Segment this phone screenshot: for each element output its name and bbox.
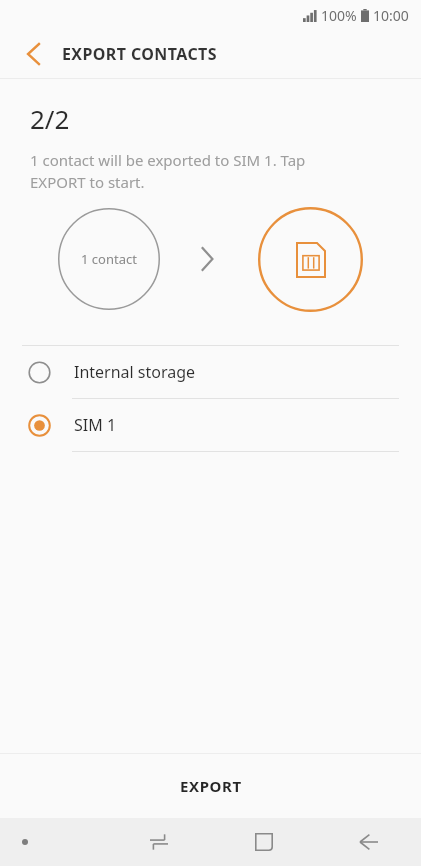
button[interactable]: EXPORT [0, 754, 421, 818]
button[interactable]: SIM 1 [0, 399, 421, 451]
staticText: 1 contact will be exported to SIM 1. Tap… [30, 150, 306, 193]
staticText: Internal storage [74, 361, 196, 383]
staticText: SIM 1 [74, 414, 117, 436]
button[interactable]: Recents [106, 818, 211, 866]
button[interactable]: Home [211, 818, 316, 866]
button[interactable]: Back [16, 37, 50, 71]
staticText: 100% [321, 6, 357, 25]
staticText: 2/2 [30, 101, 70, 136]
staticText: EXPORT CONTACTS [62, 43, 217, 65]
staticText: EXPORT [180, 776, 242, 796]
button[interactable]: Internal storage [0, 346, 421, 398]
staticText: 10:00 [373, 6, 409, 25]
button[interactable]: Back [316, 818, 421, 866]
staticText: 1 contact [81, 250, 137, 268]
